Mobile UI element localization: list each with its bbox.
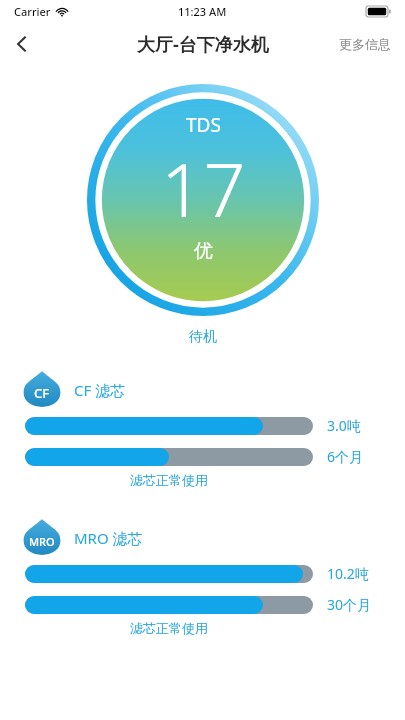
staticText: CF (34, 384, 50, 402)
button[interactable]: CF (0, 370, 405, 410)
staticText: Carrier (14, 4, 51, 19)
button[interactable]: Back (0, 22, 44, 66)
staticText: 3.0吨 (327, 416, 361, 435)
staticText: 滤芯正常使用 (130, 472, 208, 488)
staticText: 30个月 (327, 595, 372, 614)
button[interactable]: 更多信息 (335, 28, 395, 60)
staticText: 6个月 (327, 447, 364, 466)
staticText: TDS (186, 112, 221, 138)
staticText: MRO (29, 534, 55, 549)
staticText: 11:23 AM (178, 4, 227, 19)
staticText: 10.2吨 (327, 564, 369, 583)
staticText: MRO 滤芯 (74, 528, 143, 548)
button[interactable]: TDS (87, 84, 319, 316)
staticText: 优 (194, 239, 213, 263)
staticText: 更多信息 (339, 36, 391, 52)
staticText: 17 (161, 138, 246, 239)
staticText: 滤芯正常使用 (130, 620, 208, 636)
staticText: 待机 (189, 328, 217, 346)
button[interactable]: MRO (0, 518, 405, 558)
staticText: CF 滤芯 (74, 380, 126, 400)
staticText: 大厅-台下净水机 (137, 32, 269, 57)
